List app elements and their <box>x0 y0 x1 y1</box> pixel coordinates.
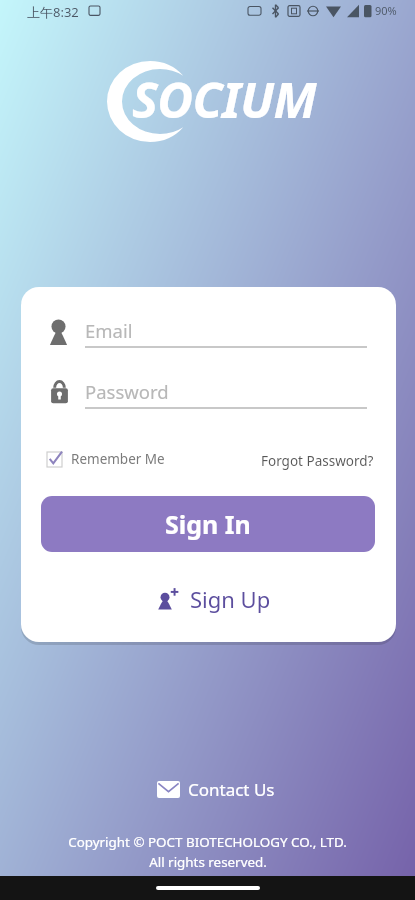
staticText: Contact Us <box>188 778 275 801</box>
staticText: SOCIUM <box>132 66 317 133</box>
staticText: Sign In <box>165 507 251 541</box>
staticText: Remember Me <box>71 450 165 468</box>
staticText: Copyright © POCT BIOTECHOLOGY CO., LTD. <box>68 833 347 851</box>
button[interactable]: Remember Me <box>47 450 165 468</box>
staticText: Password <box>85 379 169 404</box>
button[interactable]: Sign Up <box>158 584 271 614</box>
staticText: Email <box>85 318 133 343</box>
staticText: All rights reserved. <box>149 853 267 871</box>
staticText: 90% <box>375 3 397 18</box>
button[interactable]: Contact Us <box>157 778 275 801</box>
button[interactable]: Sign In <box>41 496 375 552</box>
staticText: Sign Up <box>190 584 271 614</box>
staticText: 上午8:32 <box>27 3 79 21</box>
button[interactable]: Forgot Password? <box>261 452 374 470</box>
staticText: Forgot Password? <box>261 452 374 470</box>
